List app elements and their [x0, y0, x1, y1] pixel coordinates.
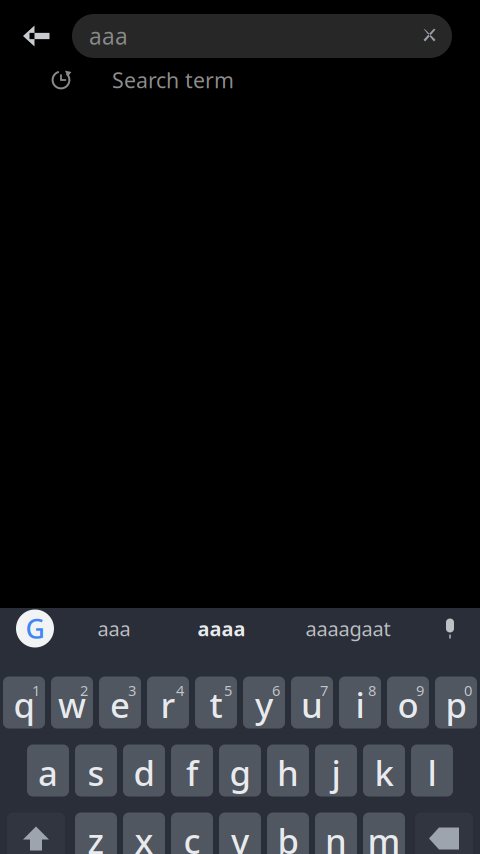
- staticText: 8: [368, 680, 376, 700]
- staticText: e: [110, 681, 130, 727]
- staticText: u: [301, 681, 323, 727]
- staticText: z: [87, 817, 104, 854]
- button[interactable]: [312, 744, 360, 796]
- button[interactable]: Shift: [0, 812, 72, 854]
- staticText: aaa: [97, 615, 130, 642]
- staticText: q: [13, 681, 34, 727]
- button[interactable]: [360, 812, 408, 854]
- staticText: v: [231, 817, 249, 854]
- staticText: 7: [320, 680, 328, 700]
- button[interactable]: [216, 744, 264, 796]
- button[interactable]: Backspace: [408, 812, 480, 854]
- staticText: i: [355, 681, 364, 727]
- button[interactable]: [120, 744, 168, 796]
- staticText: 6: [272, 680, 280, 700]
- staticText: j: [331, 749, 340, 795]
- staticText: p: [445, 681, 466, 727]
- button[interactable]: [360, 744, 408, 796]
- staticText: x: [134, 817, 153, 854]
- staticText: g: [229, 749, 250, 795]
- button[interactable]: aaaa: [158, 597, 285, 659]
- button[interactable]: 4: [144, 676, 192, 728]
- button[interactable]: 2: [48, 676, 96, 728]
- button[interactable]: Google: [0, 597, 70, 659]
- button[interactable]: [216, 812, 264, 854]
- staticText: 2: [80, 680, 88, 700]
- staticText: r: [160, 681, 175, 727]
- button[interactable]: 9: [384, 676, 432, 728]
- staticText: Search term: [112, 66, 234, 94]
- staticText: 4: [176, 680, 184, 700]
- staticText: d: [133, 749, 154, 795]
- button[interactable]: 1: [0, 676, 48, 728]
- staticText: 5: [224, 680, 232, 700]
- staticText: a: [38, 749, 58, 795]
- button[interactable]: [264, 744, 312, 796]
- button[interactable]: [72, 812, 120, 854]
- staticText: aaaagaat: [305, 615, 390, 642]
- staticText: b: [277, 817, 298, 854]
- button[interactable]: 6: [240, 676, 288, 728]
- button[interactable]: 8: [336, 676, 384, 728]
- staticText: 1: [32, 680, 40, 700]
- button[interactable]: Search term: [0, 58, 480, 102]
- staticText: h: [277, 749, 299, 795]
- staticText: n: [325, 817, 347, 854]
- button[interactable]: [264, 812, 312, 854]
- button[interactable]: [72, 744, 120, 796]
- button[interactable]: 5: [192, 676, 240, 728]
- button[interactable]: Clear: [408, 14, 452, 58]
- button[interactable]: [312, 812, 360, 854]
- button[interactable]: 7: [288, 676, 336, 728]
- button[interactable]: Back: [0, 14, 72, 58]
- button[interactable]: [24, 744, 72, 796]
- button[interactable]: [408, 744, 456, 796]
- staticText: G: [25, 611, 44, 646]
- staticText: aaa: [89, 21, 128, 51]
- staticText: 3: [128, 680, 136, 700]
- button[interactable]: [168, 744, 216, 796]
- staticText: m: [367, 817, 400, 854]
- staticText: f: [186, 749, 198, 795]
- button[interactable]: 3: [96, 676, 144, 728]
- button[interactable]: [120, 812, 168, 854]
- staticText: s: [87, 749, 104, 795]
- staticText: c: [183, 817, 200, 854]
- button[interactable]: Voice input: [420, 597, 480, 659]
- button[interactable]: aaa: [70, 597, 158, 659]
- staticText: k: [374, 749, 393, 795]
- staticText: l: [427, 749, 436, 795]
- button[interactable]: aaaagaat: [285, 597, 411, 659]
- staticText: t: [209, 681, 222, 727]
- staticText: y: [255, 681, 273, 727]
- staticText: 9: [416, 680, 424, 700]
- staticText: w: [58, 681, 86, 727]
- staticText: aaaa: [197, 615, 245, 642]
- staticText: o: [397, 681, 418, 727]
- staticText: 0: [464, 680, 472, 700]
- button[interactable]: [168, 812, 216, 854]
- button[interactable]: 0: [432, 676, 480, 728]
